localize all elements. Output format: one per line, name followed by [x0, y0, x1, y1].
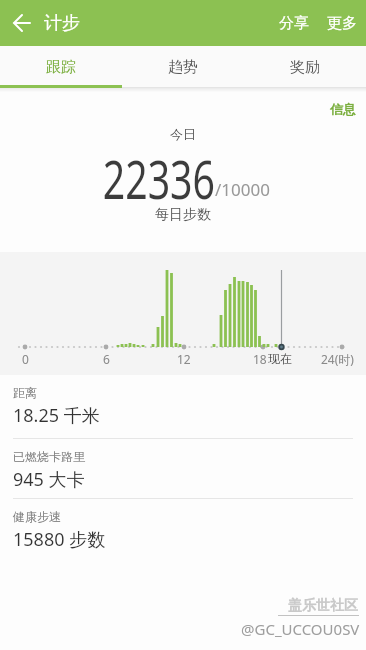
staticText: 计步 — [44, 12, 80, 35]
staticText: 奖励 — [290, 58, 320, 77]
staticText: 更多 — [327, 14, 357, 33]
button[interactable]: 健康步速 — [0, 499, 366, 560]
staticText: 现在 — [268, 351, 292, 366]
staticText: 盖乐世社区 — [288, 597, 358, 615]
staticText: 0 — [22, 351, 29, 367]
staticText: /10000 — [215, 178, 270, 201]
staticText: 18 — [253, 351, 267, 367]
staticText: 趋势 — [168, 58, 198, 77]
staticText: 6 — [103, 351, 110, 367]
button[interactable]: 趋势 — [122, 46, 244, 88]
staticText: 分享 — [279, 14, 309, 33]
staticText: 15880 步数 — [13, 527, 106, 552]
staticText: 18.25 千米 — [13, 403, 100, 428]
button[interactable]: 奖励 — [244, 46, 366, 88]
button[interactable] — [0, 0, 44, 46]
button[interactable]: 分享 — [271, 0, 317, 46]
staticText: 距离 — [13, 385, 37, 400]
button[interactable]: 跟踪 — [0, 46, 122, 88]
staticText: 健康步速 — [13, 509, 61, 524]
button[interactable]: 已燃烧卡路里 — [0, 439, 366, 498]
staticText: 945 大卡 — [13, 467, 85, 492]
staticText: 22336 — [103, 142, 215, 214]
staticText: 今日 — [170, 126, 196, 142]
staticText: 12 — [177, 351, 191, 367]
staticText: 24(时) — [321, 351, 354, 367]
staticText: 跟踪 — [46, 58, 76, 77]
button[interactable]: 更多 — [319, 0, 366, 46]
button[interactable]: 信息 — [330, 101, 356, 117]
staticText: @GC_UCCOU0SV — [241, 619, 360, 639]
button[interactable]: 距离 — [0, 375, 366, 438]
staticText: 每日步数 — [155, 206, 211, 224]
staticText: 已燃烧卡路里 — [13, 449, 85, 464]
